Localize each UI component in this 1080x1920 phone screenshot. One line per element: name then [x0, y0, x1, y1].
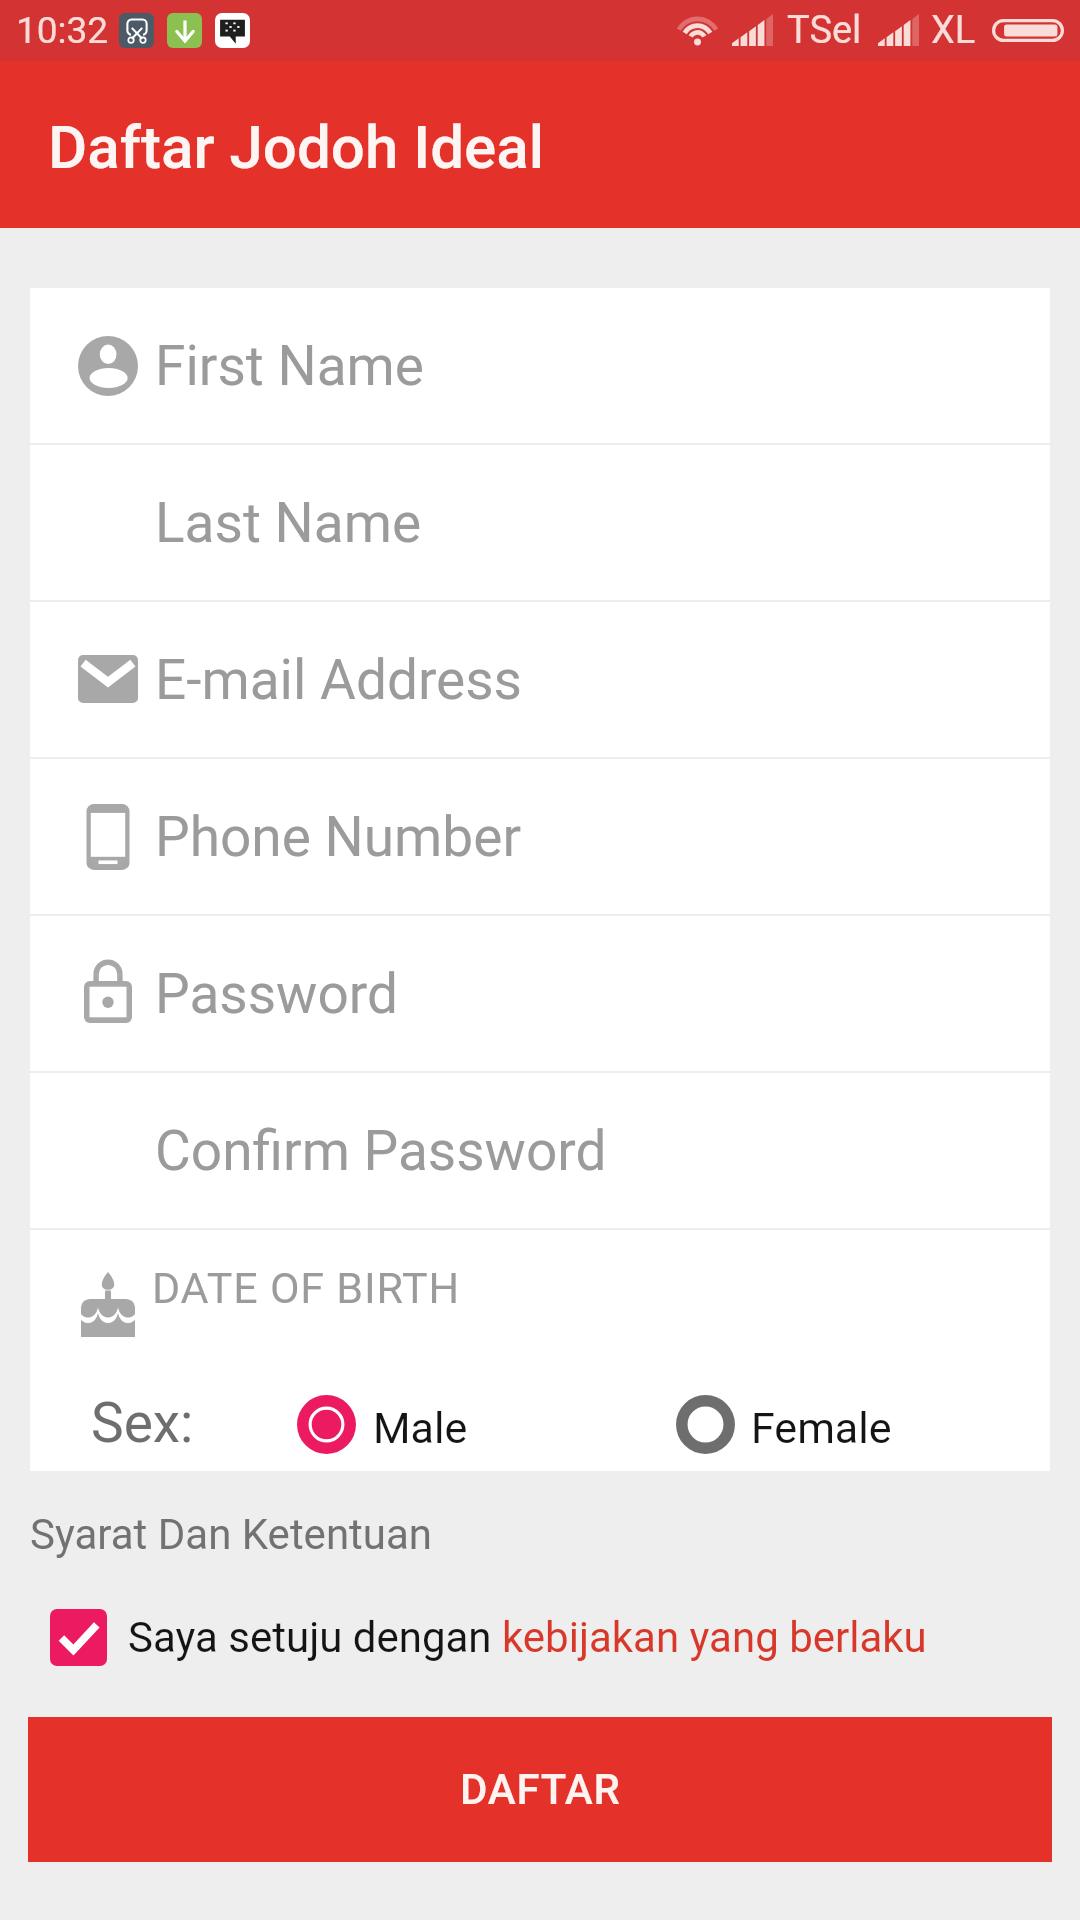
button[interactable]: E-mail Address [30, 602, 1050, 757]
staticText: Female [751, 1403, 892, 1453]
staticText: XL [931, 8, 976, 53]
button[interactable]: Last Name [30, 445, 1050, 600]
button[interactable]: Phone Number [30, 759, 1050, 914]
staticText: DATE OF BIRTH [152, 1263, 460, 1313]
staticText: Male [373, 1403, 468, 1453]
staticText: Confirm Password [155, 1119, 607, 1183]
staticText: 10:32 [16, 9, 109, 52]
staticText: Daftar Jodoh Ideal [48, 112, 545, 182]
button[interactable]: Confirm Password [30, 1073, 1050, 1228]
staticText: Saya setuju dengan kebijakan yang berlak… [128, 1613, 927, 1662]
button[interactable]: Male [297, 1395, 468, 1454]
button[interactable]: First Name [30, 288, 1050, 443]
staticText: Sex: [91, 1391, 194, 1455]
button[interactable]: Password [30, 916, 1050, 1071]
staticText: First Name [155, 334, 424, 398]
button[interactable]: DAFTAR [28, 1717, 1052, 1862]
staticText: E-mail Address [155, 648, 522, 712]
staticText: TSel [787, 8, 862, 53]
staticText: Last Name [155, 491, 422, 555]
staticText: Syarat Dan Ketentuan [30, 1510, 433, 1559]
button[interactable]: Agree to terms checkbox [50, 1609, 107, 1666]
staticText: DAFTAR [460, 1765, 621, 1814]
button[interactable]: Female [676, 1395, 892, 1454]
staticText: Password [155, 962, 398, 1026]
button[interactable]: DATE OF BIRTH [30, 1230, 1050, 1352]
button[interactable]: Agree to terms checkbox [0, 1609, 1080, 1666]
staticText: Phone Number [155, 805, 522, 869]
